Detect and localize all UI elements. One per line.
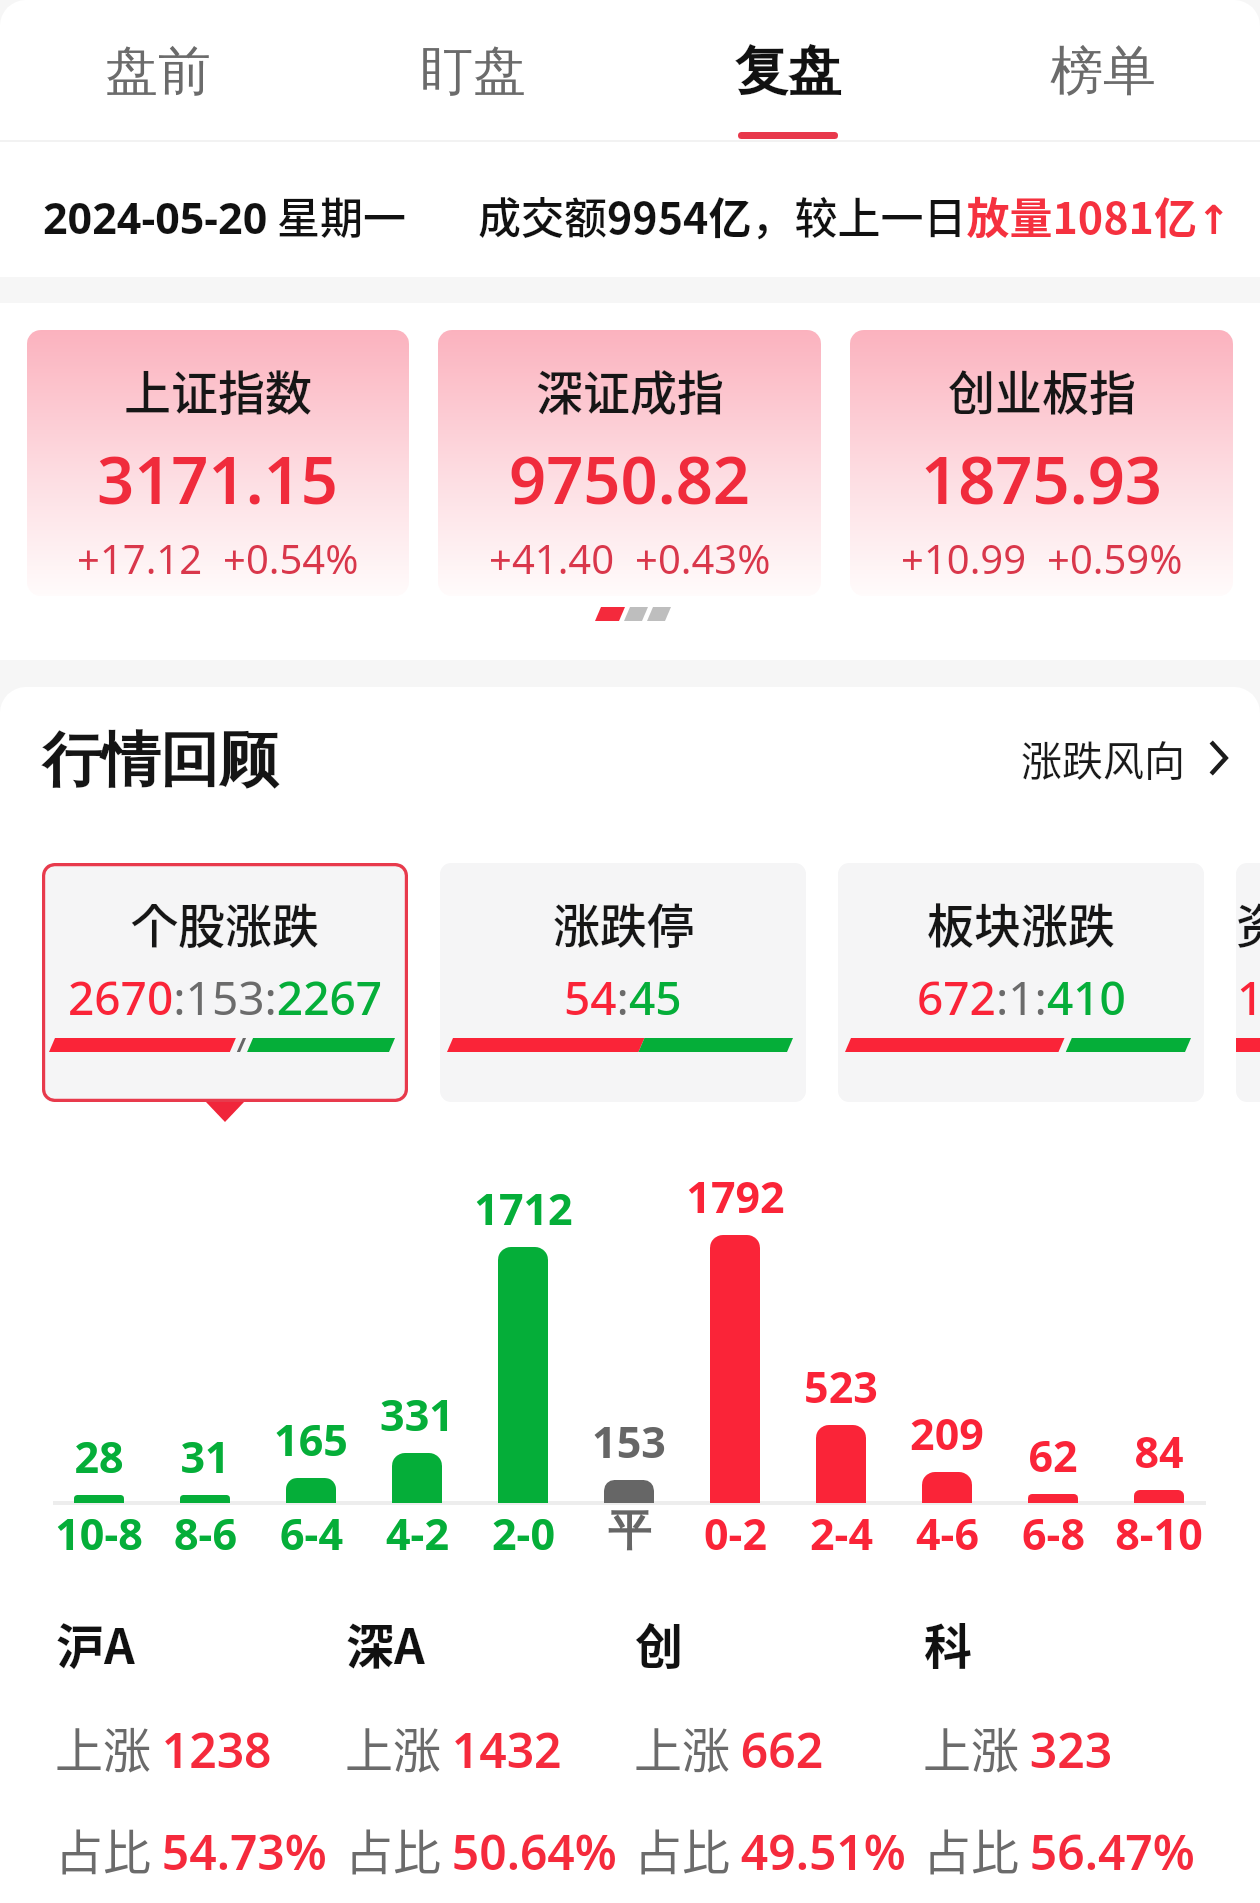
staticText: 科	[924, 1608, 973, 1678]
staticText: 盯盘	[420, 38, 526, 105]
button[interactable]: 深证成指	[438, 330, 821, 596]
staticText: +41.40	[489, 531, 615, 585]
staticText: +0.59%	[1047, 531, 1183, 585]
staticText: 0-2	[704, 1504, 767, 1563]
staticText: 209	[910, 1404, 984, 1463]
staticText: 上涨 1432	[345, 1712, 562, 1782]
staticText: 523	[804, 1357, 878, 1416]
staticText: 占比 49.51%	[634, 1814, 906, 1884]
staticText: 复盘	[735, 38, 841, 105]
staticText: 上涨 323	[923, 1712, 1113, 1782]
staticText: +0.43%	[635, 531, 771, 585]
staticText: 上涨 1238	[55, 1712, 272, 1782]
staticText: 165	[274, 1410, 348, 1469]
button[interactable]: 资金流向	[1236, 863, 1260, 1102]
button[interactable]: 盯盘	[315, 0, 630, 150]
button[interactable]: 盘前	[0, 0, 315, 150]
staticText: 行情回顾	[42, 723, 278, 797]
staticText: 8-10	[1115, 1504, 1203, 1563]
staticText: 占比 54.73%	[55, 1814, 327, 1884]
staticText: 31	[180, 1427, 230, 1486]
button[interactable]: 复盘	[630, 0, 945, 150]
staticText: 创业板指	[948, 355, 1136, 423]
staticText: 平	[608, 1504, 651, 1558]
staticText: 1792	[686, 1167, 785, 1226]
staticText: 153	[592, 1412, 666, 1471]
button[interactable]: 板块涨跌	[838, 863, 1204, 1102]
staticText: 上证指数	[124, 355, 312, 423]
staticText: 资金流向	[1236, 888, 1260, 956]
staticText: 84	[1134, 1422, 1184, 1481]
staticText: 62	[1028, 1426, 1078, 1485]
staticText: 3171.15	[97, 435, 339, 524]
button[interactable]: 个股涨跌	[42, 863, 408, 1102]
staticText: 331	[380, 1385, 454, 1444]
staticText: 2-4	[810, 1504, 873, 1563]
staticText: 10-8	[55, 1504, 143, 1563]
staticText: 1875.93	[921, 435, 1163, 524]
staticText: 4-6	[916, 1504, 979, 1563]
staticText: 榜单	[1050, 38, 1156, 105]
staticText: 深A	[346, 1608, 425, 1678]
staticText: 2024-05-20 星期一	[43, 184, 406, 246]
staticText: 涨跌停	[553, 888, 694, 956]
staticText: +17.12	[77, 531, 203, 585]
staticText: 占比 56.47%	[923, 1814, 1195, 1884]
staticText: 54:45	[564, 966, 682, 1029]
staticText: 4-2	[386, 1504, 449, 1563]
staticText: 占比 50.64%	[345, 1814, 617, 1884]
staticText: 上涨 662	[634, 1712, 824, 1782]
staticText: 9750.82	[509, 435, 751, 524]
staticText: 2-0	[492, 1504, 555, 1563]
staticText: 1:1	[1237, 966, 1260, 1029]
staticText: 2670:153:2267	[68, 966, 383, 1029]
staticText: +10.99	[901, 531, 1027, 585]
staticText: 涨跌风向	[1021, 728, 1185, 787]
button[interactable]: 涨跌停	[440, 863, 806, 1102]
button[interactable]: 涨跌风向	[1021, 728, 1228, 787]
staticText: 1712	[474, 1179, 573, 1238]
staticText: 个股涨跌	[131, 888, 319, 956]
staticText: 创	[635, 1608, 684, 1678]
staticText: 6-8	[1022, 1504, 1085, 1563]
staticText: 板块涨跌	[927, 888, 1115, 956]
staticText: 28	[74, 1427, 124, 1486]
staticText: 沪A	[56, 1608, 135, 1678]
staticText: 盘前	[105, 38, 211, 105]
button[interactable]: 榜单	[945, 0, 1260, 150]
staticText: 深证成指	[536, 355, 724, 423]
staticText: 成交额9954亿，较上一日放量1081亿↑	[478, 184, 1231, 246]
button[interactable]: 创业板指	[850, 330, 1233, 596]
staticText: +0.54%	[223, 531, 359, 585]
staticText: 8-6	[174, 1504, 237, 1563]
staticText: 6-4	[280, 1504, 343, 1563]
button[interactable]: 上证指数	[27, 330, 409, 596]
staticText: 672:1:410	[917, 966, 1126, 1029]
